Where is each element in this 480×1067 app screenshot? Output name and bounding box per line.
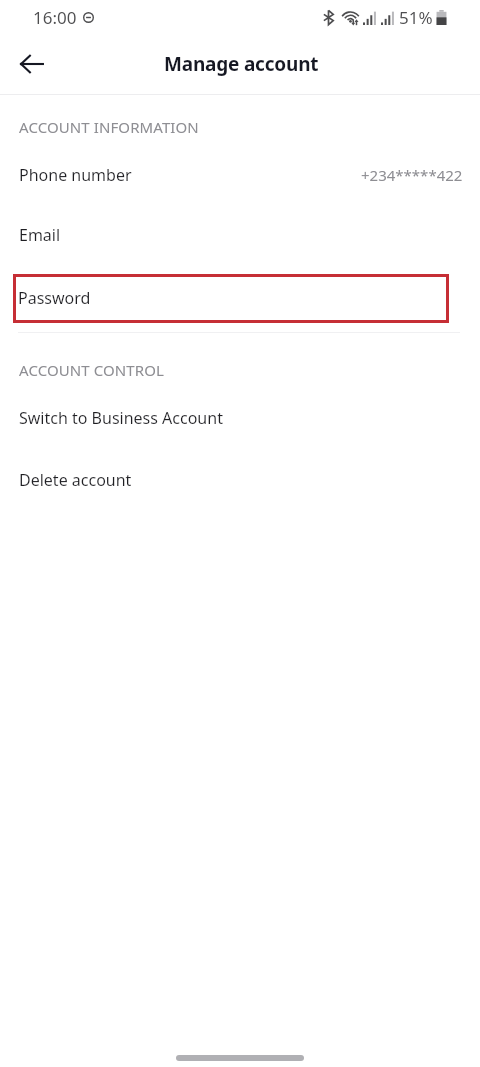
button[interactable]: Phone number <box>0 145 480 205</box>
staticText: Phone number <box>19 164 132 186</box>
staticText: +234*****422 <box>361 165 463 185</box>
button[interactable]: Password <box>13 274 449 323</box>
staticText: 51% <box>399 6 433 29</box>
button[interactable]: Delete account <box>0 450 480 510</box>
button[interactable]: Email <box>0 205 480 265</box>
staticText: Password <box>18 287 91 309</box>
staticText: Delete account <box>19 469 132 491</box>
staticText: 16:00 <box>33 6 77 29</box>
staticText: Email <box>19 224 61 246</box>
staticText: ACCOUNT INFORMATION <box>19 117 199 137</box>
staticText: Switch to Business Account <box>19 407 223 429</box>
staticText: Manage account <box>164 51 319 77</box>
staticText: ACCOUNT CONTROL <box>19 360 165 380</box>
button[interactable]: Switch to Business Account <box>0 388 480 448</box>
button[interactable]: Back <box>8 40 56 88</box>
